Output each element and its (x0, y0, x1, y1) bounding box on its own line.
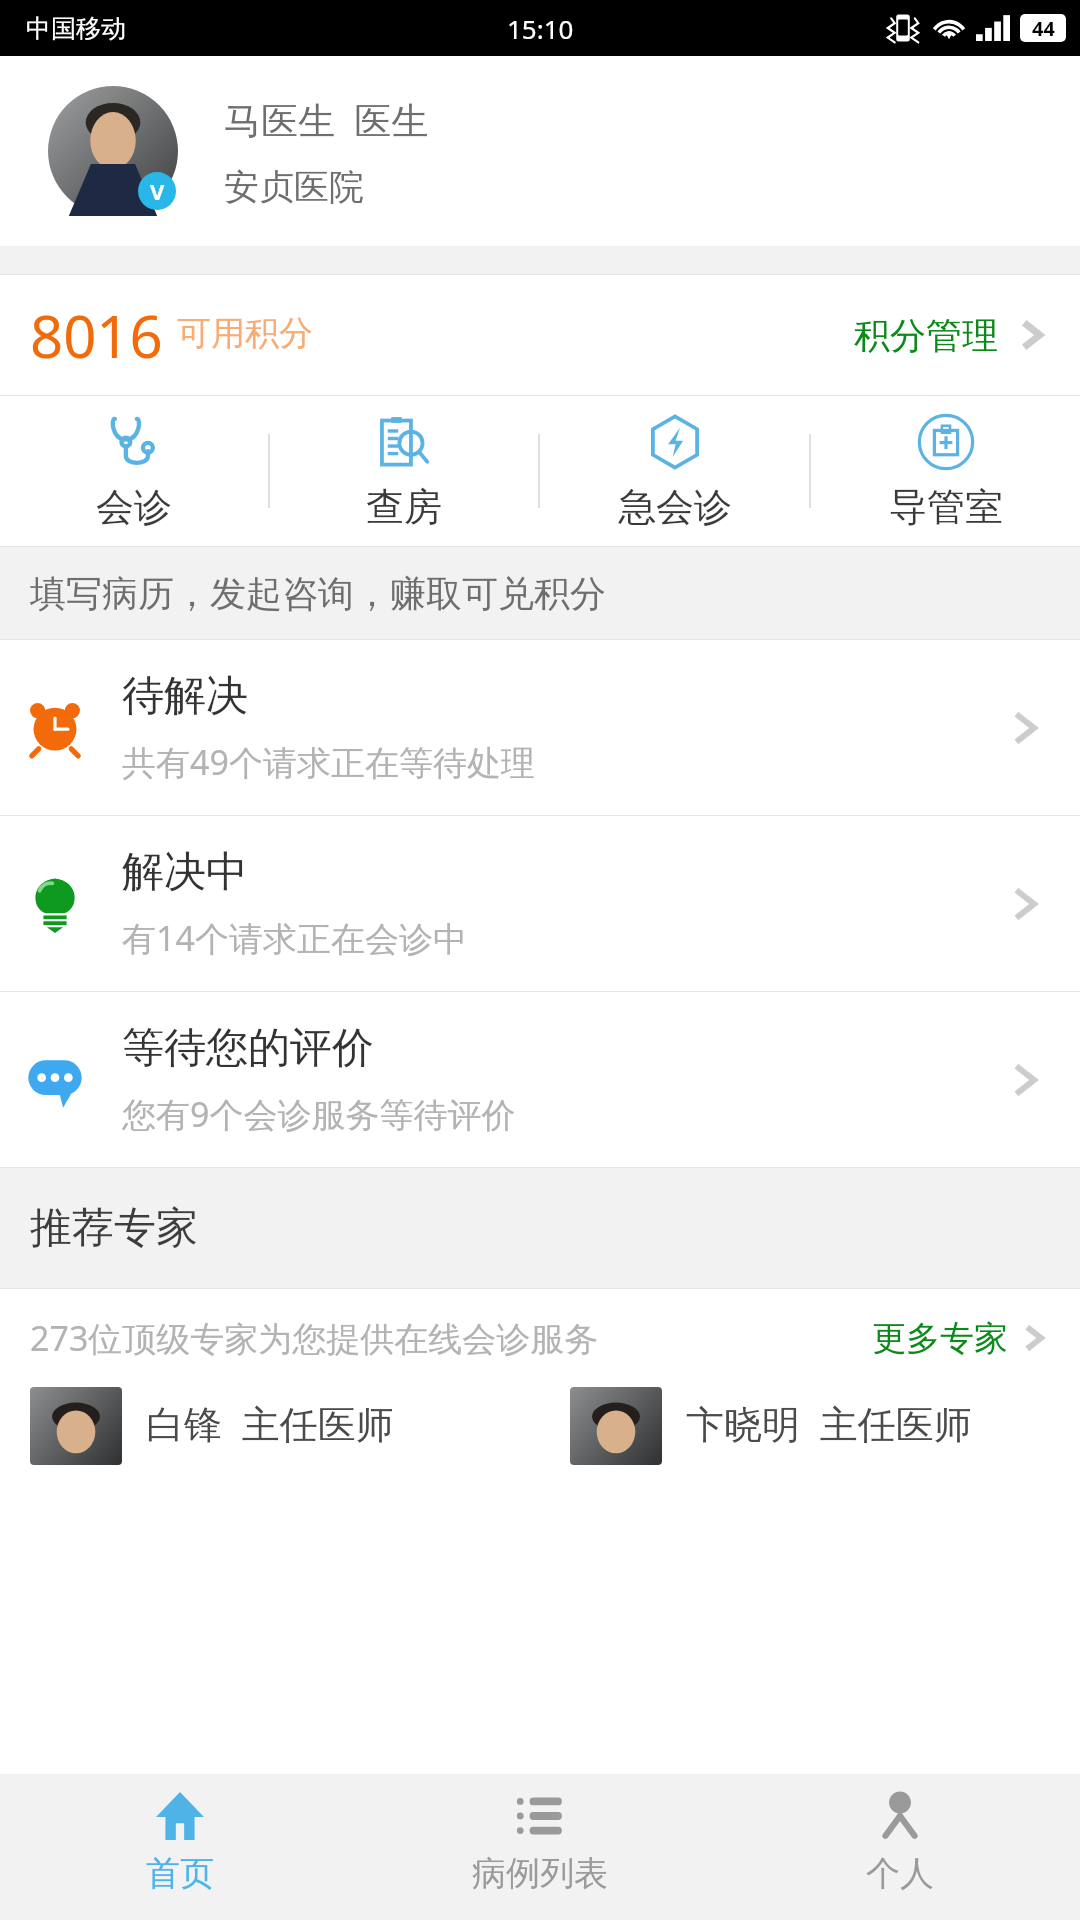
button[interactable]: 导管室 (811, 396, 1080, 546)
staticText: 查房 (366, 483, 442, 531)
staticText: 白锋 主任医师 (146, 1397, 394, 1449)
staticText: 更多专家 (872, 1317, 1008, 1360)
staticText: 中国移动 (26, 13, 126, 44)
staticText: 卞晓明 主任医师 (686, 1397, 972, 1449)
staticText: 待解决 (122, 670, 248, 723)
button[interactable]: 解决中 (0, 816, 1080, 991)
staticText: 马医生 医生 (224, 94, 429, 145)
staticText: 等待您的评价 (122, 1022, 374, 1075)
staticText: 会诊 (96, 483, 172, 531)
staticText: 安贞医院 (224, 165, 364, 209)
staticText: 解决中 (122, 846, 248, 899)
staticText: 填写病历，发起咨询，赚取可兑积分 (30, 571, 606, 616)
button[interactable]: 等待您的评价 (0, 992, 1080, 1167)
staticText: 共有49个请求正在等待处理 (122, 739, 535, 785)
button[interactable]: 首页 (0, 1774, 360, 1920)
button[interactable]: 病例列表 (360, 1774, 720, 1920)
staticText: V (150, 176, 165, 206)
button[interactable]: 8016 (0, 275, 1080, 395)
staticText: 首页 (146, 1852, 214, 1895)
staticText: 积分管理 (854, 313, 998, 358)
button[interactable]: 待解决 (0, 640, 1080, 815)
staticText: 导管室 (889, 483, 1003, 531)
button[interactable]: 白锋 主任医师 (0, 1387, 540, 1465)
staticText: 44 (1032, 15, 1055, 42)
staticText: 病例列表 (472, 1852, 608, 1895)
button[interactable]: 查房 (270, 396, 538, 546)
staticText: 8016 (30, 296, 163, 375)
button[interactable]: 个人 (720, 1774, 1080, 1920)
staticText: 有14个请求正在会诊中 (122, 915, 467, 961)
staticText: 您有9个会诊服务等待评价 (122, 1091, 516, 1137)
button[interactable]: 急会诊 (540, 396, 809, 546)
button[interactable]: 会诊 (0, 396, 268, 546)
staticText: 急会诊 (618, 483, 732, 531)
button[interactable]: 卞晓明 主任医师 (540, 1387, 1080, 1465)
button[interactable]: V (0, 56, 1080, 246)
staticText: 个人 (866, 1852, 934, 1895)
button[interactable]: 273位顶级专家为您提供在线会诊服务 (0, 1289, 1080, 1387)
staticText: 15:10 (507, 11, 574, 46)
staticText: 推荐专家 (30, 1202, 198, 1255)
staticText: 273位顶级专家为您提供在线会诊服务 (30, 1315, 599, 1361)
staticText: 可用积分 (177, 312, 313, 355)
